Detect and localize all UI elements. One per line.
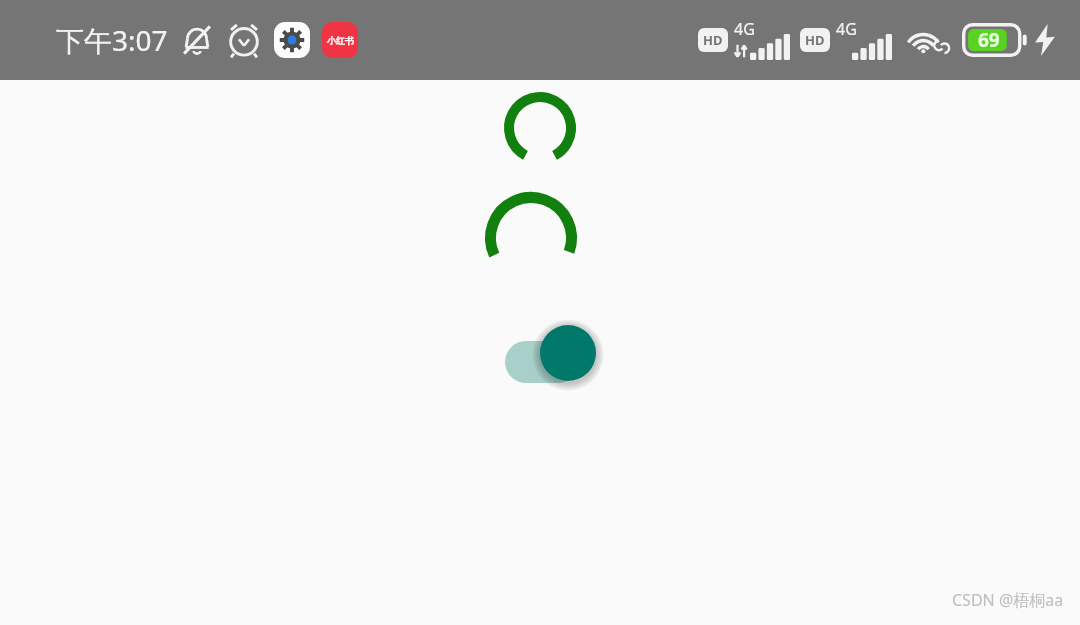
staticText: 下午3:07 <box>56 21 168 59</box>
staticText: HD <box>703 31 723 49</box>
button[interactable] <box>504 324 596 382</box>
staticText: 小红书 <box>327 35 354 46</box>
staticText: 4G <box>734 18 755 40</box>
staticText: CSDN @梧桐aa <box>952 589 1064 611</box>
staticText: 4G <box>836 18 857 40</box>
staticText: 69 <box>978 27 1000 53</box>
staticText: HD <box>805 31 825 49</box>
